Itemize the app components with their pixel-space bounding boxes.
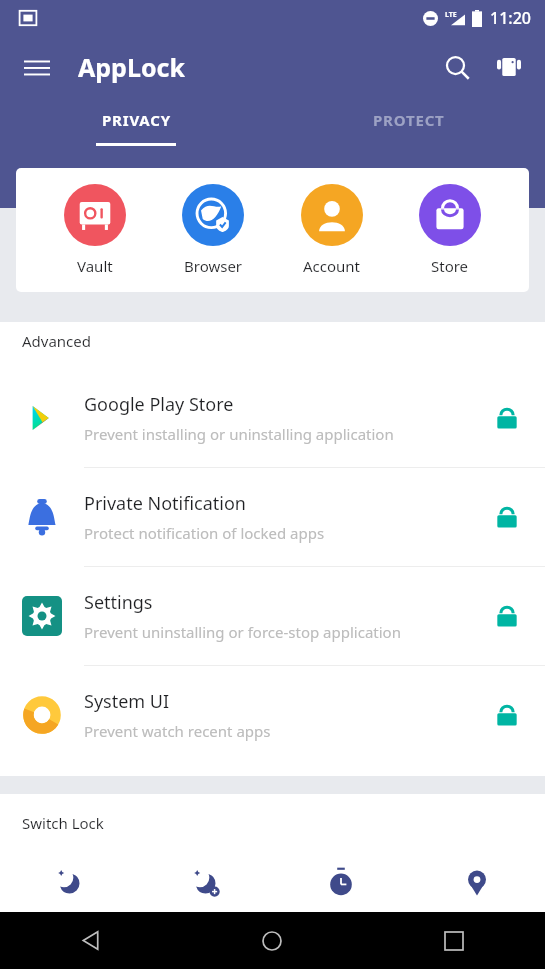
staticText: x [460, 16, 465, 26]
staticText: AppLock [78, 50, 185, 84]
button[interactable]: Vault [56, 184, 134, 276]
staticText: Vault [77, 256, 113, 276]
staticText: Prevent watch recent apps [84, 721, 271, 741]
button[interactable]: Night mode [0, 851, 137, 912]
staticText: Prevent installing or uninstalling appli… [84, 424, 394, 444]
staticText: 11:20 [490, 7, 531, 29]
button[interactable]: Recents [363, 912, 545, 969]
staticText: PROTECT [373, 110, 445, 130]
button[interactable]: Back [0, 912, 181, 969]
staticText: Advanced [22, 331, 92, 351]
staticText: PRIVACY [102, 110, 171, 130]
button[interactable]: System UI [0, 666, 545, 764]
button[interactable]: Menu [12, 42, 62, 92]
staticText: Google Play Store [84, 392, 234, 417]
staticText: System UI [84, 689, 170, 714]
staticText: LTE [445, 10, 457, 20]
button[interactable]: Private Notification [0, 468, 545, 566]
staticText: Prevent uninstalling or force-stop appli… [84, 622, 401, 642]
button[interactable]: PRIVACY [0, 98, 272, 154]
button[interactable]: Google Play Store [0, 369, 545, 467]
staticText: Browser [184, 256, 243, 276]
button[interactable]: Account [293, 184, 371, 276]
button[interactable]: Add night profile [137, 851, 273, 912]
staticText: Settings [84, 590, 153, 615]
button[interactable]: PROTECT [272, 98, 545, 154]
button[interactable]: Store [411, 184, 489, 276]
button[interactable]: Search [431, 41, 483, 93]
staticText: Switch Lock [22, 813, 104, 833]
staticText: Account [303, 256, 361, 276]
button[interactable]: Browser [174, 184, 252, 276]
button[interactable]: Location [409, 851, 545, 912]
button[interactable]: Settings [0, 567, 545, 665]
staticText: Protect notification of locked apps [84, 523, 325, 543]
staticText: Store [431, 256, 469, 276]
button[interactable]: Home [181, 912, 363, 969]
button[interactable]: Timer [273, 851, 409, 912]
button[interactable]: Themes [483, 41, 535, 93]
staticText: Private Notification [84, 491, 246, 516]
